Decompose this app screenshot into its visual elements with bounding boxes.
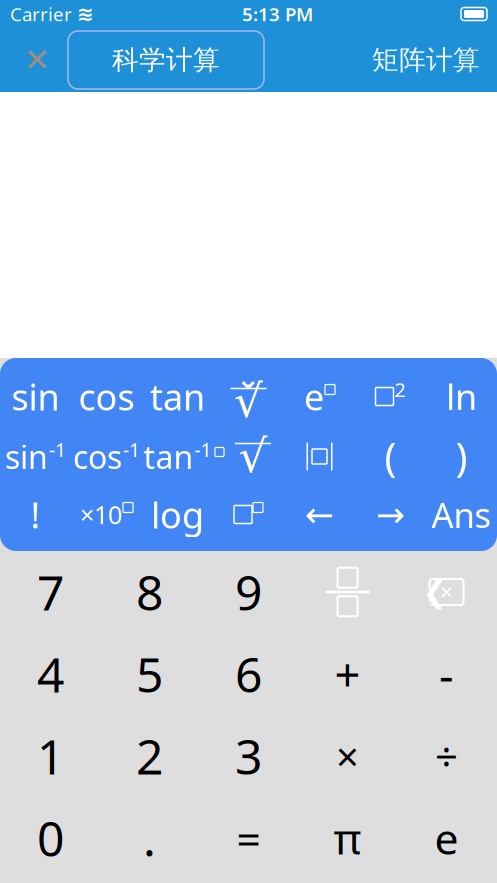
staticText: cos — [73, 435, 122, 478]
button[interactable]: Arc sine — [0, 427, 71, 485]
button[interactable]: ln — [426, 367, 497, 425]
button[interactable]: e to the power — [284, 367, 355, 425]
button[interactable]: Absolute value — [284, 427, 355, 485]
button[interactable]: e — [397, 797, 496, 879]
staticText: ln — [446, 373, 477, 420]
staticText: 9 — [235, 560, 262, 624]
button[interactable]: ( — [355, 427, 426, 485]
button[interactable]: 2 — [100, 715, 199, 797]
staticText: sin — [11, 373, 59, 420]
staticText: ! — [30, 491, 40, 538]
staticText: Carrier — [10, 2, 72, 26]
staticText: 1 — [37, 724, 64, 788]
staticText: ‹ — [420, 565, 432, 618]
staticText: ≋ — [77, 3, 94, 25]
button[interactable]: Square — [355, 367, 426, 425]
button[interactable]: sin — [0, 367, 71, 425]
button[interactable]: Close — [6, 28, 68, 92]
button[interactable]: 8 — [100, 551, 199, 633]
staticText: √ — [234, 376, 263, 427]
button[interactable]: + — [298, 633, 397, 715]
staticText: 科学计算 — [112, 44, 220, 76]
staticText: 7 — [37, 560, 64, 624]
button[interactable]: π — [298, 797, 397, 879]
button[interactable]: = — [199, 797, 298, 879]
button[interactable]: Delete — [397, 551, 496, 633]
staticText: 2 — [394, 376, 405, 403]
staticText: ← — [305, 495, 334, 534]
staticText: ×10 — [80, 498, 122, 531]
button[interactable]: - — [397, 633, 496, 715]
button[interactable]: ! — [0, 485, 71, 543]
staticText: × — [336, 729, 359, 782]
staticText: -1 — [49, 436, 66, 463]
button[interactable]: Fraction — [298, 551, 397, 633]
staticText: tan — [143, 435, 193, 478]
staticText: 2 — [136, 724, 163, 788]
staticText: log — [151, 491, 204, 538]
staticText: -1 — [123, 436, 140, 463]
button[interactable]: 0 — [1, 797, 100, 879]
staticText: 6 — [235, 642, 262, 706]
button[interactable]: . — [100, 797, 199, 879]
staticText: Ans — [431, 491, 491, 537]
button[interactable]: 矩阵计算 — [361, 31, 491, 89]
button[interactable]: Move left — [284, 485, 355, 543]
staticText: 矩阵计算 — [372, 44, 480, 76]
button[interactable]: Nth root — [213, 427, 284, 485]
button[interactable]: 7 — [1, 551, 100, 633]
button[interactable]: Times ten to the power — [71, 485, 142, 543]
button[interactable]: 科学计算 — [68, 31, 264, 89]
staticText: → — [376, 495, 405, 534]
staticText: ⌄ — [236, 362, 261, 395]
staticText: 3 — [235, 724, 262, 788]
staticText: ÷ — [435, 729, 458, 782]
staticText: -1 — [194, 436, 211, 463]
staticText: π — [333, 810, 361, 866]
staticText: ❮ — [422, 575, 447, 609]
staticText: . — [143, 806, 156, 870]
button[interactable]: Arc tangent — [142, 427, 213, 485]
staticText: ) — [455, 430, 467, 483]
staticText: ( — [384, 430, 396, 483]
staticText: cos — [78, 373, 134, 420]
staticText: sin — [5, 435, 48, 478]
button[interactable]: ÷ — [397, 715, 496, 797]
button[interactable]: 6 — [199, 633, 298, 715]
staticText: tan — [150, 373, 205, 420]
staticText: 4 — [37, 642, 64, 706]
button[interactable]: Arc cosine — [71, 427, 142, 485]
staticText: √ — [238, 431, 267, 482]
button[interactable]: 3 — [199, 715, 298, 797]
staticText: = — [236, 810, 260, 866]
button[interactable]: cos — [71, 367, 142, 425]
staticText: - — [439, 644, 454, 704]
staticText: ✕ — [23, 42, 50, 78]
staticText: 5 — [136, 642, 163, 706]
staticText: 5:13 PM — [242, 2, 313, 26]
staticText: e — [304, 373, 324, 420]
button[interactable]: Move right — [355, 485, 426, 543]
staticText: 8 — [136, 560, 163, 624]
button[interactable]: 1 — [1, 715, 100, 797]
button[interactable]: Ans — [426, 485, 497, 543]
staticText: × — [440, 577, 453, 607]
button[interactable]: ) — [426, 427, 497, 485]
button[interactable]: Power — [213, 485, 284, 543]
button[interactable]: × — [298, 715, 397, 797]
button[interactable]: Square root — [213, 367, 284, 425]
button[interactable]: 4 — [1, 633, 100, 715]
staticText: e — [434, 810, 458, 866]
button[interactable]: log — [142, 485, 213, 543]
staticText: + — [334, 644, 360, 704]
button[interactable]: 9 — [199, 551, 298, 633]
button[interactable]: 5 — [100, 633, 199, 715]
staticText: 0 — [37, 806, 64, 870]
button[interactable]: tan — [142, 367, 213, 425]
